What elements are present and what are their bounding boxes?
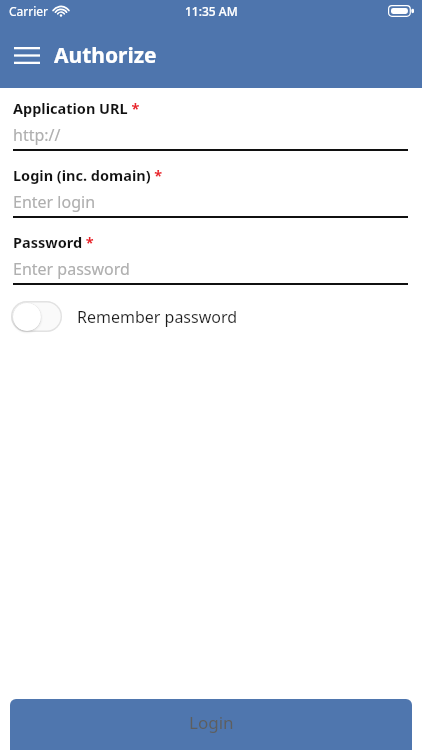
staticText: http:// [13, 124, 61, 146]
staticText: Application URL * [13, 98, 140, 118]
staticText: Carrier [9, 3, 49, 19]
staticText: 11:35 AM [185, 3, 238, 19]
button[interactable]: Open navigation menu [0, 33, 54, 78]
staticText: Authorize [54, 41, 157, 70]
button[interactable]: Login [10, 699, 412, 750]
staticText: Enter login [13, 191, 96, 213]
staticText: Login [189, 711, 234, 734]
button[interactable]: Password * [0, 232, 422, 285]
button[interactable]: Login (inc. domain) * [0, 165, 422, 218]
staticText: Enter password [13, 258, 130, 280]
staticText: Login (inc. domain) * [13, 165, 163, 185]
staticText: Password * [13, 232, 94, 252]
staticText: Remember password [77, 306, 238, 328]
other: Remember password toggle [11, 301, 62, 332]
button[interactable]: Application URL * [0, 98, 422, 151]
button[interactable]: Remember password toggle [0, 297, 422, 336]
